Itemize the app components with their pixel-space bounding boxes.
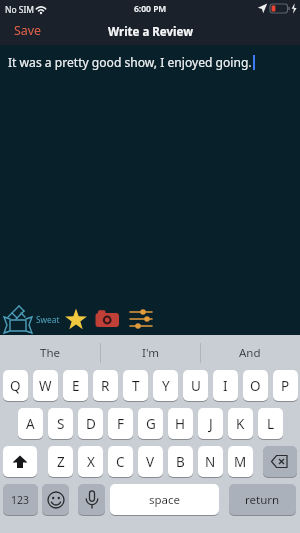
button[interactable]: [64, 307, 88, 331]
staticText: And: [239, 345, 261, 361]
button[interactable]: I'm: [100, 335, 200, 370]
button[interactable]: N: [198, 446, 223, 478]
staticText: U: [191, 377, 201, 395]
button[interactable]: R: [93, 370, 118, 402]
staticText: space: [149, 492, 181, 508]
staticText: F: [117, 415, 125, 433]
staticText: C: [116, 453, 125, 471]
staticText: G: [146, 415, 156, 433]
staticText: Q: [10, 377, 21, 395]
staticText: R: [101, 377, 110, 395]
button[interactable]: H: [168, 408, 193, 440]
staticText: W: [39, 377, 52, 395]
button[interactable]: And: [200, 335, 300, 370]
button[interactable]: [263, 446, 297, 478]
staticText: N: [205, 453, 216, 471]
staticText: 123: [11, 493, 30, 507]
button[interactable]: [78, 484, 105, 516]
staticText: It was a pretty good show, I enjoyed goi…: [8, 54, 252, 70]
button[interactable]: O: [243, 370, 268, 402]
staticText: J: [209, 415, 213, 433]
staticText: Y: [162, 377, 170, 395]
button[interactable]: X: [78, 446, 103, 478]
button[interactable]: Save: [14, 22, 42, 39]
button[interactable]: Z: [48, 446, 73, 478]
button[interactable]: [42, 484, 69, 516]
staticText: S: [57, 415, 65, 433]
button[interactable]: L: [258, 408, 283, 440]
button[interactable]: M: [228, 446, 253, 478]
staticText: 6:00 PM: [134, 3, 167, 15]
button[interactable]: [130, 309, 152, 329]
staticText: M: [234, 453, 247, 471]
button[interactable]: W: [33, 370, 58, 402]
button[interactable]: F: [108, 408, 133, 440]
staticText: V: [146, 453, 155, 471]
staticText: Write a Review: [108, 24, 193, 40]
staticText: L: [267, 415, 275, 433]
staticText: D: [86, 415, 96, 433]
button[interactable]: Y: [153, 370, 178, 402]
button[interactable]: I: [213, 370, 238, 402]
button[interactable]: C: [108, 446, 133, 478]
staticText: O: [250, 377, 261, 395]
staticText: H: [175, 415, 186, 433]
button[interactable]: Q: [3, 370, 28, 402]
button[interactable]: A: [18, 408, 43, 440]
button[interactable]: S: [48, 408, 73, 440]
staticText: Sweat: [36, 314, 60, 325]
button[interactable]: K: [228, 408, 253, 440]
button[interactable]: D: [78, 408, 103, 440]
button[interactable]: [3, 304, 32, 333]
staticText: return: [245, 492, 280, 508]
staticText: I: [223, 377, 228, 395]
button[interactable]: [95, 310, 120, 328]
button[interactable]: B: [168, 446, 193, 478]
button[interactable]: return: [229, 484, 296, 516]
button[interactable]: J: [198, 408, 223, 440]
staticText: I'm: [142, 345, 159, 361]
staticText: K: [236, 415, 245, 433]
button[interactable]: T: [123, 370, 148, 402]
staticText: T: [132, 377, 140, 395]
staticText: No SIM: [5, 4, 35, 16]
staticText: X: [87, 453, 95, 471]
button[interactable]: E: [63, 370, 88, 402]
staticText: A: [26, 415, 35, 433]
button[interactable]: U: [183, 370, 208, 402]
staticText: E: [72, 377, 80, 395]
staticText: The: [40, 345, 60, 361]
button[interactable]: space: [110, 484, 219, 516]
button[interactable]: V: [138, 446, 163, 478]
staticText: P: [281, 377, 290, 395]
staticText: B: [176, 453, 185, 471]
button[interactable]: G: [138, 408, 163, 440]
staticText: Z: [57, 453, 65, 471]
button[interactable]: 123: [3, 484, 38, 516]
button[interactable]: [3, 446, 37, 478]
button[interactable]: P: [273, 370, 298, 402]
button[interactable]: The: [0, 335, 100, 370]
